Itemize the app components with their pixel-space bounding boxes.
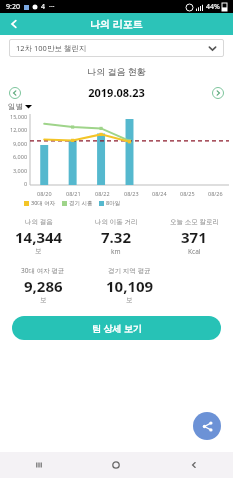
staticText: 팀 상세 보기 <box>92 322 142 334</box>
staticText: 경기 지역 평균 <box>108 266 151 275</box>
staticText: 9,000 <box>13 140 28 147</box>
staticText: ··· <box>49 2 55 12</box>
button[interactable]: Home <box>77 452 155 478</box>
staticText: 3,000 <box>13 167 28 174</box>
staticText: 30대 여자 평균 <box>21 266 65 275</box>
button[interactable]: 팀 상세 보기 <box>12 316 221 340</box>
button[interactable]: 일별 <box>8 102 32 111</box>
staticText: 오늘 소모 칼로리 <box>170 217 219 226</box>
button[interactable]: Previous day <box>8 86 22 100</box>
staticText: km <box>111 247 121 256</box>
staticText: 08/24 <box>152 190 167 197</box>
staticText: 10,109 <box>106 276 154 296</box>
staticText: 2019.08.23 <box>22 85 211 100</box>
staticText: 경기 시흥 <box>69 199 93 207</box>
staticText: 나의 이동 거리 <box>95 217 138 226</box>
staticText: 371 <box>181 227 207 247</box>
staticText: 보 <box>126 296 133 304</box>
staticText: 4 <box>41 2 46 12</box>
staticText: Kcal <box>188 247 201 256</box>
staticText: 14,344 <box>15 227 63 247</box>
staticText: 12,000 <box>10 126 28 133</box>
staticText: 나의 리포트 <box>90 17 143 31</box>
button[interactable]: 12차 100만보 챌린지 <box>9 39 224 57</box>
button[interactable]: Next day <box>211 86 225 100</box>
button[interactable]: Recents <box>0 452 77 478</box>
staticText: 0 <box>24 180 28 187</box>
staticText: 30대 여자 <box>31 199 56 207</box>
staticText: 6,000 <box>13 153 28 160</box>
staticText: 9,286 <box>24 276 63 296</box>
staticText: 나의 걸음 <box>25 217 53 226</box>
staticText: 12차 100만보 챌린지 <box>16 43 87 53</box>
staticText: 15,000 <box>10 113 28 120</box>
staticText: 8마일 <box>106 199 121 207</box>
staticText: 08/22 <box>95 190 110 197</box>
staticText: 보 <box>40 296 47 304</box>
staticText: 08/26 <box>208 190 223 197</box>
staticText: 보 <box>35 247 42 255</box>
button[interactable]: Back <box>155 452 233 478</box>
staticText: 7.32 <box>101 227 131 247</box>
staticText: 08/23 <box>124 190 139 197</box>
staticText: 08/20 <box>37 190 52 197</box>
staticText: 일별 <box>8 102 23 111</box>
staticText: 44% <box>206 2 220 12</box>
staticText: 08/21 <box>66 190 81 197</box>
staticText: 나의 걸음 현황 <box>0 65 233 77</box>
button[interactable]: Share <box>193 412 221 440</box>
staticText: 08/25 <box>180 190 195 197</box>
staticText: 9:20 <box>6 2 20 12</box>
button[interactable]: Back <box>0 13 28 35</box>
